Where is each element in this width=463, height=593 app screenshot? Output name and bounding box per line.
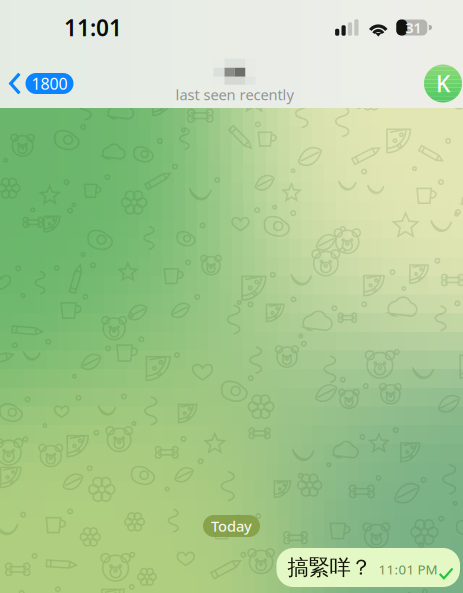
staticText: Today — [211, 516, 252, 536]
staticText: last seen recently — [175, 85, 293, 104]
staticText: 搞緊咩？ — [287, 554, 371, 581]
staticText: K — [436, 68, 450, 98]
button[interactable]: Contact profile — [424, 59, 463, 107]
staticText: 11:01 PM — [378, 561, 437, 578]
staticText: 11:01 — [64, 12, 122, 42]
button[interactable]: 1800 — [0, 64, 73, 103]
staticText: 1800 — [31, 73, 67, 94]
staticText: 31 — [405, 18, 421, 37]
